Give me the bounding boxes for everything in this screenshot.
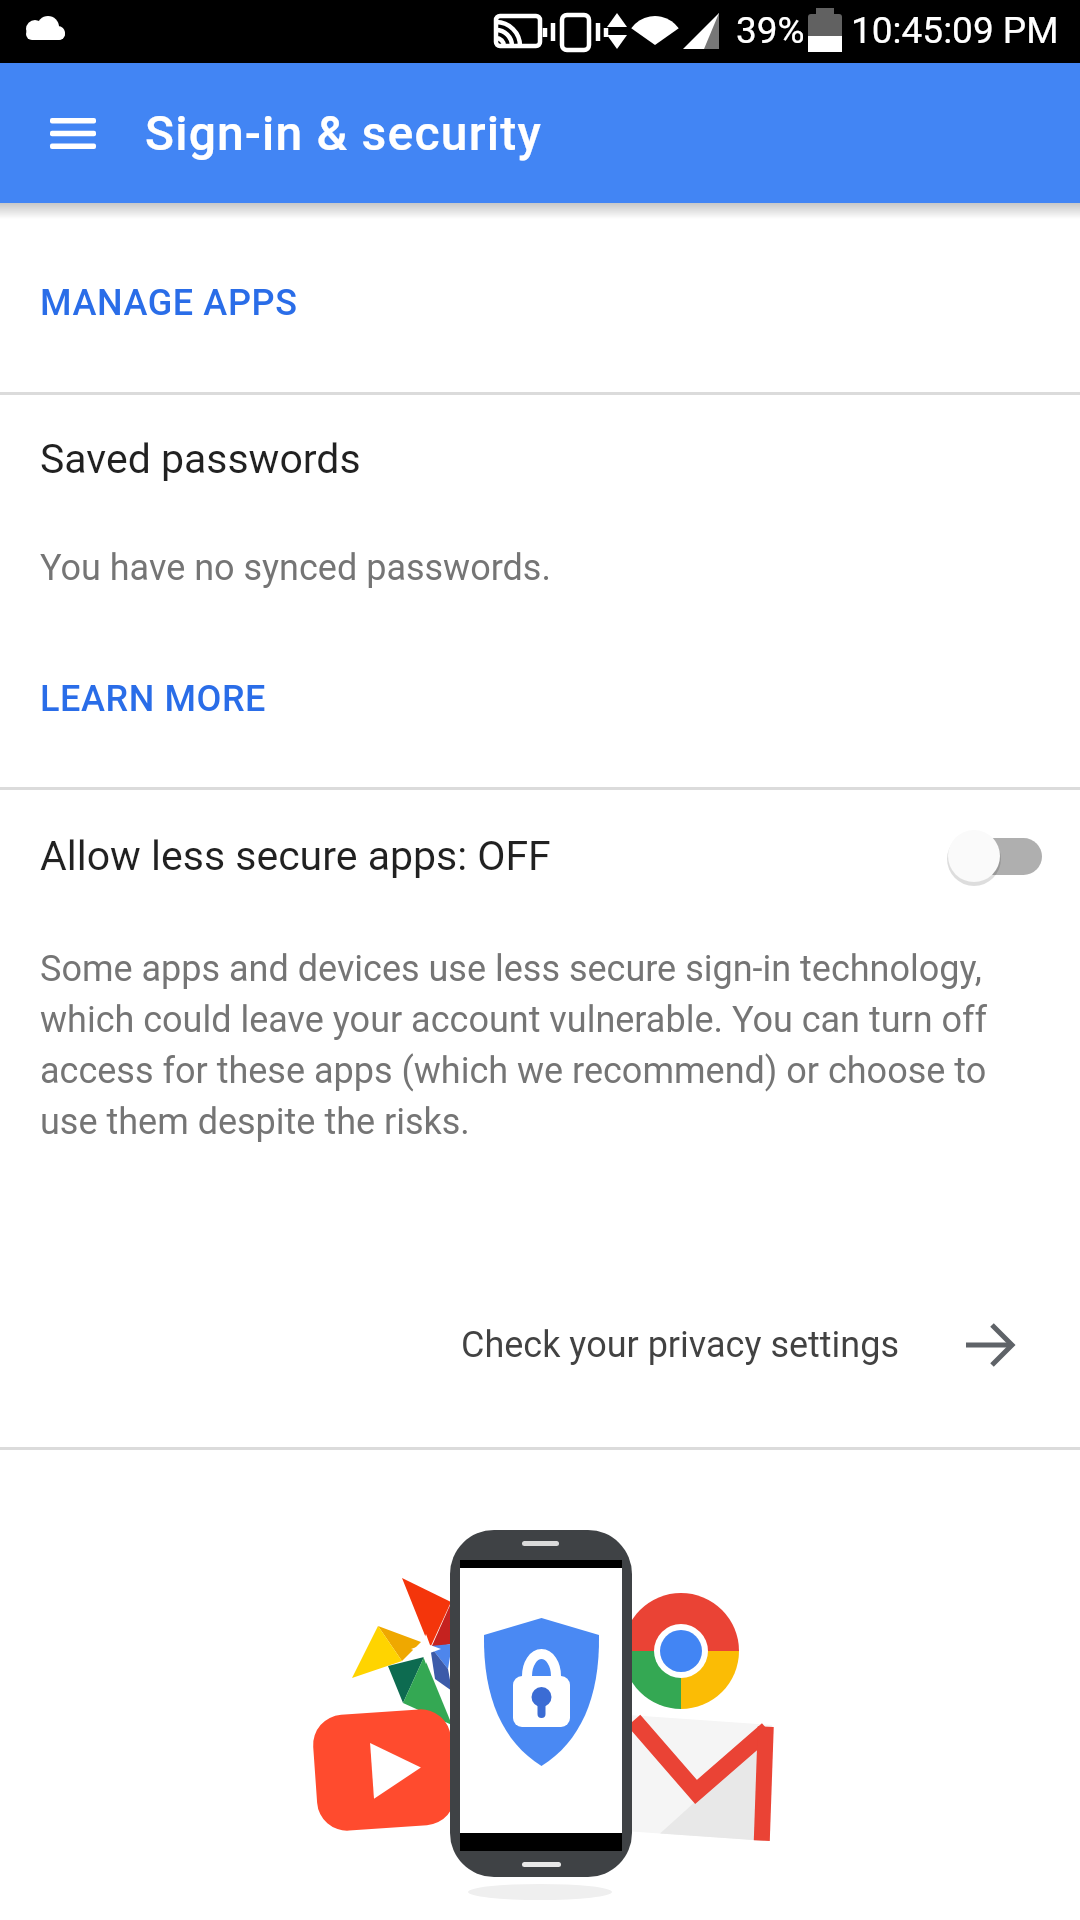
staticText: 10:45:09 PM: [851, 9, 1059, 52]
staticText: LEARN MORE: [40, 678, 267, 720]
staticText: MANAGE APPS: [40, 282, 298, 324]
staticText: 39%: [736, 9, 805, 52]
staticText: Saved passwords: [40, 435, 361, 483]
staticText: Check your privacy settings: [461, 1324, 900, 1366]
staticText: Allow less secure apps: OFF: [40, 832, 551, 880]
button[interactable]: [44, 104, 102, 162]
button[interactable]: MANAGE APPS: [40, 268, 298, 338]
button[interactable]: Allow less secure apps: OFF: [0, 820, 1080, 892]
button[interactable]: LEARN MORE: [40, 664, 267, 734]
staticText: Sign-in & security: [145, 105, 542, 161]
button[interactable]: Check your privacy settings: [0, 1312, 1080, 1378]
staticText: Some apps and devices use less secure si…: [40, 948, 988, 1143]
staticText: You have no synced passwords.: [40, 547, 551, 589]
